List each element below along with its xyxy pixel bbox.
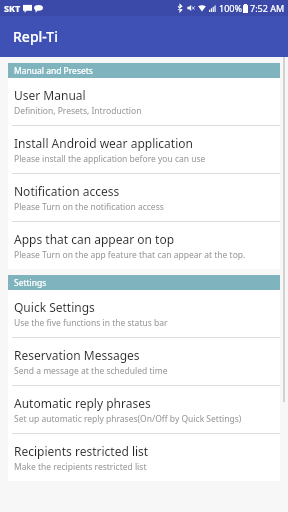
staticText: Use the five functions in the status bar [14,317,168,329]
staticText: Quick Settings [14,299,95,315]
button[interactable]: Reservation Messages [8,338,280,386]
staticText: Please Turn on the notification access [14,201,164,213]
staticText: Repl-Ti [13,27,58,46]
button[interactable]: Notification access [8,174,280,222]
staticText: Manual and Presets [14,65,93,77]
staticText: Please install the application before yo… [14,153,206,165]
staticText: Apps that can appear on top [14,231,175,247]
staticText: Recipients restricted list [14,443,149,459]
staticText: Please Turn on the app feature that can … [14,249,246,261]
staticText: Notification access [14,183,120,199]
button[interactable]: Automatic reply phrases [8,386,280,434]
staticText: Make the recipients restricted list [14,461,147,473]
staticText: Definition, Presets, Introduction [14,105,142,117]
button[interactable]: Install Android wear application [8,126,280,174]
staticText: 7:52 AM [250,2,285,14]
staticText: SKT [4,2,21,14]
staticText: Settings [14,277,47,289]
staticText: 100% [219,2,242,14]
staticText: User Manual [14,87,86,103]
staticText: Send a message at the scheduled time [14,365,168,377]
button[interactable]: Recipients restricted list [8,434,280,481]
staticText: Set up automatic reply phrases(On/Off by… [14,413,242,425]
staticText: Install Android wear application [14,135,193,151]
button[interactable]: Quick Settings [8,290,280,338]
button[interactable]: User Manual [8,78,280,126]
button[interactable]: Apps that can appear on top [8,222,280,269]
staticText: Automatic reply phrases [14,395,151,411]
staticText: Reservation Messages [14,347,140,363]
